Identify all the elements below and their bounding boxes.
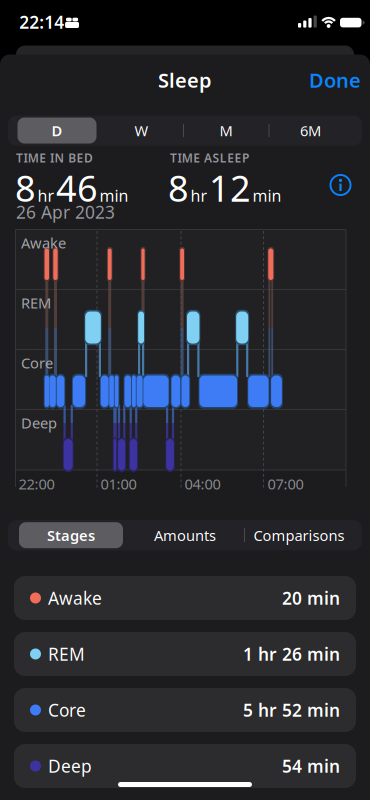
button[interactable]: Stages [19,522,123,548]
button[interactable]: 6M [268,116,352,144]
staticText: 46 [56,164,98,212]
staticText: Comparisons [253,525,344,545]
staticText: 8 [15,164,36,212]
staticText: hr [190,185,207,206]
staticText: 20 min [282,586,340,609]
staticText: W [134,121,148,140]
staticText: hr [37,185,54,206]
button[interactable]: Comparisons [244,521,354,549]
button[interactable]: Core [14,688,356,732]
button[interactable]: REM [14,632,356,676]
staticText: M [219,121,232,140]
staticText: 26 Apr 2023 [16,200,115,223]
staticText: 5 hr 52 min [243,698,340,721]
staticText: Core [21,353,53,372]
staticText: Awake [48,586,102,609]
staticText: Awake [21,233,66,252]
staticText: Amounts [154,525,216,545]
staticText: Sleep [158,67,212,93]
button[interactable]: M [184,116,268,144]
button[interactable]: W [99,116,183,144]
button[interactable]: Awake [14,576,356,620]
button[interactable]: D [17,117,96,143]
staticText: 04:00 [184,474,220,493]
staticText: 07:00 [267,474,303,493]
staticText: Done [309,67,361,93]
button[interactable]: Deep [14,744,356,788]
staticText: 12 [209,164,251,212]
staticText: 54 min [282,754,340,777]
button[interactable]: About Sleep [326,171,354,199]
staticText: 01:00 [100,474,136,493]
staticText: 22:14 [19,10,64,33]
button[interactable]: Amounts [130,521,240,549]
staticText: 1 hr 26 min [243,642,340,665]
staticText: min [99,185,128,206]
staticText: Core [48,698,86,721]
staticText: D [51,121,62,140]
staticText: TIME ASLEEP [170,150,249,166]
staticText: 22:00 [18,474,54,493]
staticText: Deep [21,413,57,432]
staticText: 6M [300,121,321,140]
staticText: Stages [47,525,95,545]
button[interactable]: Done [309,67,361,93]
staticText: REM [21,293,51,312]
staticText: 8 [168,164,189,212]
staticText: min [252,185,281,206]
staticText: REM [48,642,85,665]
staticText: Deep [48,754,92,777]
staticText: TIME IN BED [16,150,93,166]
